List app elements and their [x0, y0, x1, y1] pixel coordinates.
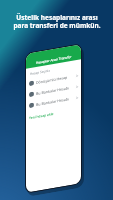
staticText: Üstelik hesaplarınız arası para transfer…	[13, 13, 101, 30]
button[interactable]: Bu Bankalar Hesabı	[20, 57, 86, 124]
staticText: Dönüşümlü Hesap	[33, 57, 77, 101]
staticText: Hesaplar Arası Transfer	[34, 40, 74, 80]
button[interactable]: Yeni hesap ekle	[26, 100, 56, 131]
staticText: Hesap Seçiniz	[28, 60, 52, 84]
staticText: Bu Bankalar Hesabı	[33, 79, 77, 123]
button[interactable]: Bu Bankalar Hesabı	[20, 68, 86, 135]
staticText: Bu Bankalar Hesabı	[33, 68, 77, 112]
button[interactable]: Dönüşümlü Hesap	[20, 46, 86, 113]
